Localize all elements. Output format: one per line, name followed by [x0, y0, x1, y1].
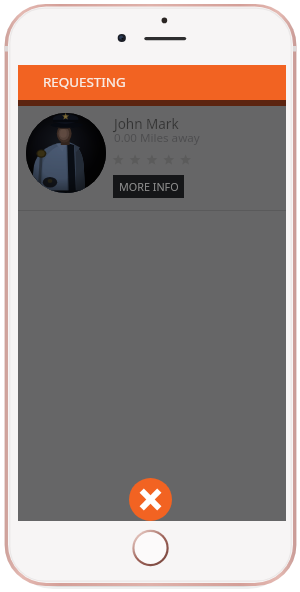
button[interactable]	[26, 113, 106, 193]
staticText: John Mark	[114, 115, 179, 133]
button[interactable]: REQUESTING	[18, 65, 286, 100]
button[interactable]: MORE INFO	[113, 175, 184, 198]
staticText: MORE INFO	[119, 179, 179, 194]
staticText: REQUESTING	[43, 73, 126, 91]
button[interactable]: Cancel request	[129, 478, 172, 521]
staticText: 0.00 Miles away	[114, 130, 200, 146]
